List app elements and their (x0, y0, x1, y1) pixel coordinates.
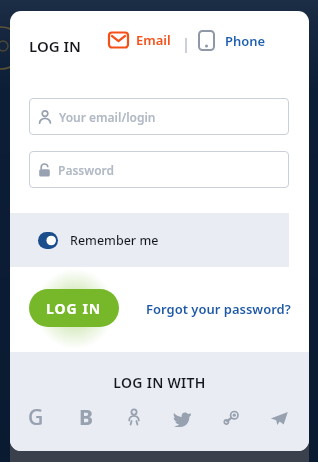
staticText: Remember me (70, 232, 159, 249)
button[interactable]: Email (108, 31, 171, 49)
button[interactable] (128, 409, 140, 429)
button[interactable]: Remember me (10, 213, 289, 267)
button[interactable]: LOG IN (29, 289, 119, 327)
button[interactable]: Forgot your password? (146, 300, 291, 318)
staticText: LOG IN WITH (10, 373, 309, 392)
button[interactable] (270, 411, 288, 426)
button[interactable] (173, 411, 191, 426)
staticText: LOG IN (29, 36, 81, 56)
button[interactable]: G (28, 403, 44, 432)
button[interactable]: Password (29, 151, 289, 188)
button[interactable]: Your email/login (29, 98, 289, 135)
staticText: Password (58, 162, 115, 178)
staticText: LOG IN (46, 299, 102, 318)
staticText: Your email/login (59, 109, 156, 125)
button[interactable]: B (79, 403, 93, 432)
staticText: Email (136, 31, 171, 49)
button[interactable]: Phone (196, 30, 266, 51)
button[interactable] (223, 410, 239, 426)
staticText: Phone (225, 32, 266, 50)
